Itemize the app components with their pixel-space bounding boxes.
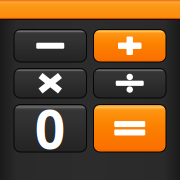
button[interactable]: Plus	[93, 29, 166, 62]
button[interactable]: Zero	[13, 104, 87, 152]
button[interactable]: Minus	[13, 29, 87, 62]
button[interactable]: Multiply	[13, 68, 87, 98]
staticText: 0	[35, 93, 66, 164]
button[interactable]: Equals	[93, 104, 166, 152]
button[interactable]: Divide	[93, 68, 166, 98]
